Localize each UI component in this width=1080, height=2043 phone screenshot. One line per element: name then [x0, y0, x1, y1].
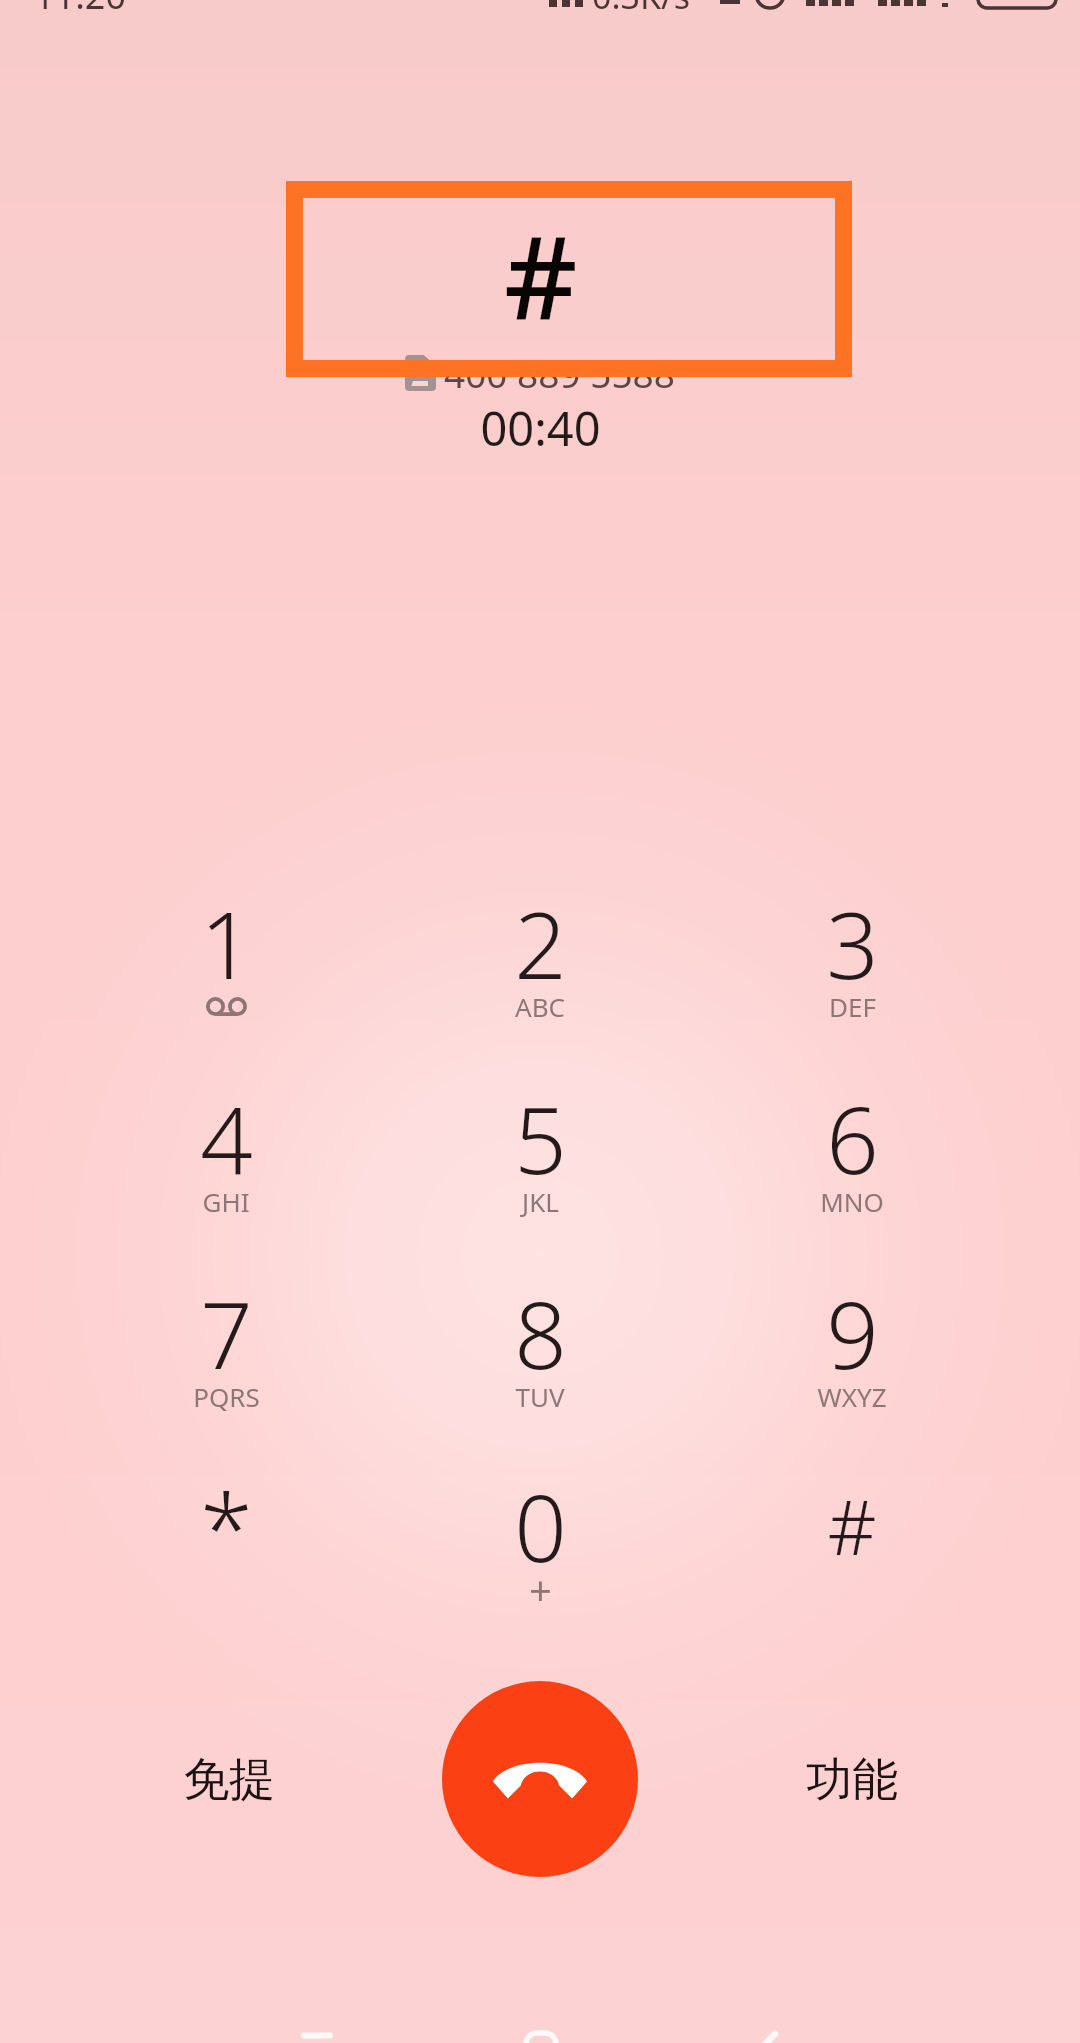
button[interactable]: Recent apps [210, 1983, 390, 2043]
button[interactable]: Dial * [76, 1434, 376, 1626]
button[interactable]: Dial # [702, 1434, 1002, 1626]
button[interactable]: Dial 9 [702, 1241, 1002, 1433]
staticText: ABC [515, 989, 565, 1024]
staticText: # [827, 1474, 877, 1578]
button[interactable]: Dial 4 [76, 1046, 376, 1238]
button[interactable]: Dial 7 [76, 1241, 376, 1433]
staticText: 0 [514, 1464, 567, 1589]
staticText: 8 [514, 1271, 567, 1396]
staticText: * [200, 1461, 253, 1592]
button[interactable]: Dial 8 [390, 1241, 690, 1433]
button[interactable]: Dial 6 [702, 1046, 1002, 1238]
staticText: 400 889 5588 [444, 348, 675, 398]
staticText: 4 [200, 1076, 253, 1201]
staticText: MNO [820, 1184, 884, 1219]
staticText: PQRS [193, 1379, 260, 1414]
staticText: 11:20 [34, 0, 127, 20]
staticText: TUV [515, 1379, 565, 1414]
staticText: 00:40 [480, 396, 601, 460]
staticText: 2 [514, 881, 567, 1006]
staticText: JKL [522, 1184, 559, 1219]
button[interactable]: 功能 [702, 1700, 1002, 1860]
button[interactable]: 免提 [79, 1700, 379, 1860]
staticText: 5 [514, 1076, 567, 1201]
button[interactable]: Dial 5 [390, 1046, 690, 1238]
button[interactable]: Dial 1 [76, 851, 376, 1043]
button[interactable]: Dial 3 [702, 851, 1002, 1043]
staticText: 3 [826, 881, 879, 1006]
staticText: # [504, 198, 578, 353]
button[interactable]: Back [690, 1983, 870, 2043]
staticText: 9 [826, 1271, 879, 1396]
button[interactable]: End call [442, 1681, 638, 1877]
staticText: 6 [826, 1076, 879, 1201]
button[interactable]: Home [450, 1983, 630, 2043]
staticText: 1 [200, 881, 253, 1006]
staticText: 7 [200, 1271, 253, 1396]
staticText: 免提 [183, 1751, 275, 1809]
staticText: DEF [829, 989, 876, 1024]
staticText: 功能 [806, 1751, 898, 1809]
staticText: 0.3K/s [592, 0, 690, 19]
staticText: WXYZ [817, 1379, 887, 1414]
button[interactable]: Dial 0 [390, 1434, 690, 1626]
staticText: GHI [202, 1184, 250, 1219]
button[interactable]: Dial 2 [390, 851, 690, 1043]
staticText: + [529, 1562, 552, 1616]
